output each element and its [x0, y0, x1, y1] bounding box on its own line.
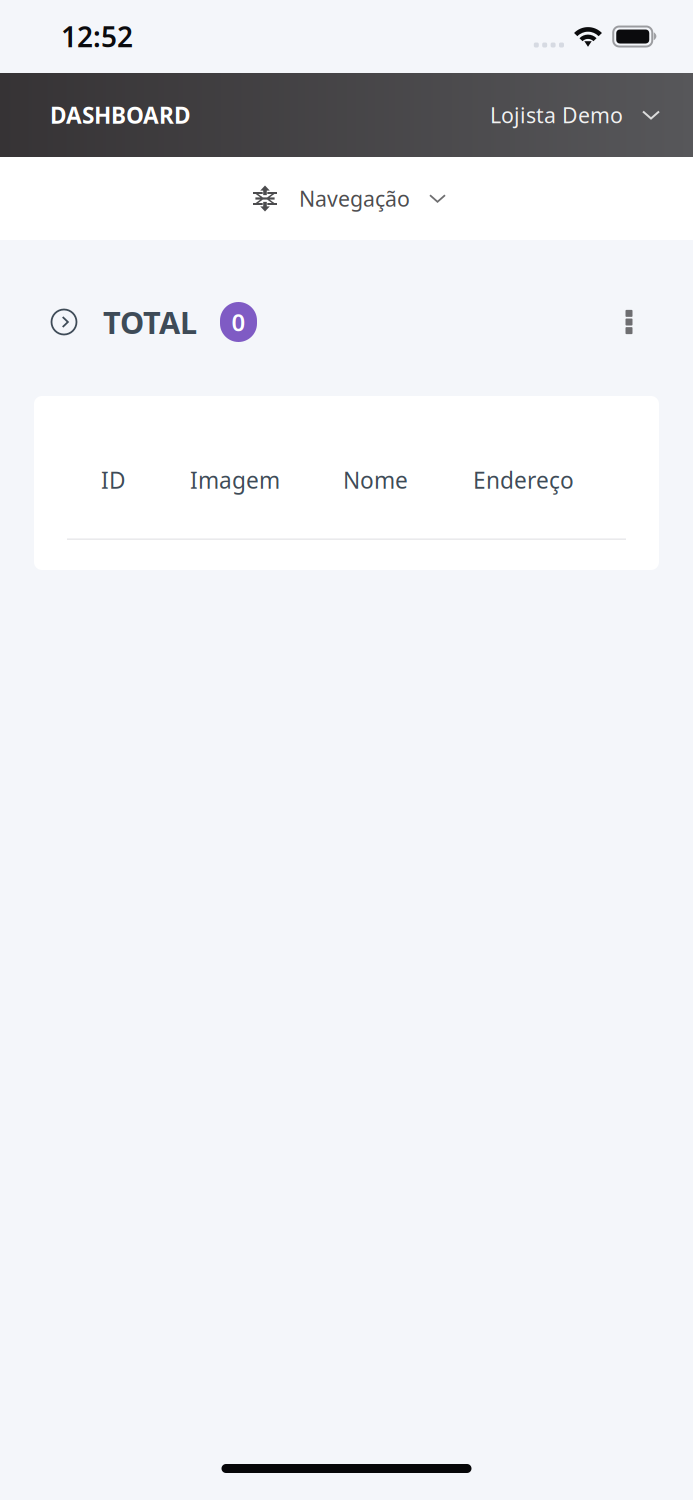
staticText: 0: [231, 306, 245, 338]
button[interactable]: More options: [614, 307, 644, 337]
staticText: Lojista Demo: [490, 101, 623, 129]
staticText: DASHBOARD: [50, 100, 191, 130]
staticText: 12:52: [61, 18, 133, 55]
staticText: Endereço: [473, 465, 574, 495]
staticText: Nome: [343, 465, 408, 495]
staticText: TOTAL: [103, 302, 197, 342]
staticText: Imagem: [190, 465, 280, 495]
staticText: ID: [101, 465, 126, 495]
button[interactable]: TOTAL: [51, 302, 257, 342]
button[interactable]: Navegação: [248, 184, 445, 213]
button[interactable]: Lojista Demo: [490, 101, 659, 129]
staticText: Navegação: [299, 184, 410, 213]
